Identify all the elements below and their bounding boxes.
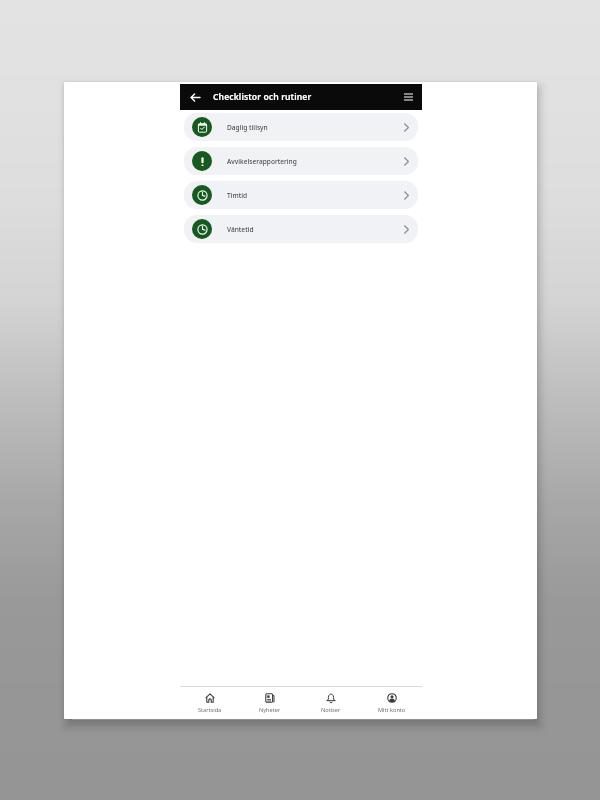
- staticText: Startsida: [198, 706, 222, 714]
- staticText: Mitt konto: [378, 706, 406, 714]
- staticText: Timtid: [227, 191, 248, 200]
- button[interactable]: Timtid: [184, 181, 418, 209]
- staticText: Nyheter: [259, 706, 281, 714]
- staticText: Notiser: [321, 706, 341, 714]
- button[interactable]: Väntetid: [184, 215, 418, 243]
- button[interactable]: Nyheter: [240, 687, 300, 719]
- button[interactable]: Startsida: [180, 687, 240, 719]
- button[interactable]: [180, 84, 209, 110]
- staticText: Checklistor och rutiner: [213, 91, 312, 103]
- button[interactable]: Avvikelserapportering: [184, 147, 418, 175]
- button[interactable]: Notiser: [300, 687, 361, 719]
- button[interactable]: Daglig tillsyn: [184, 113, 418, 141]
- button[interactable]: [397, 84, 419, 110]
- staticText: Avvikelserapportering: [227, 157, 297, 166]
- staticText: Daglig tillsyn: [227, 123, 268, 132]
- button[interactable]: Mitt konto: [361, 687, 422, 719]
- staticText: Väntetid: [227, 225, 254, 234]
